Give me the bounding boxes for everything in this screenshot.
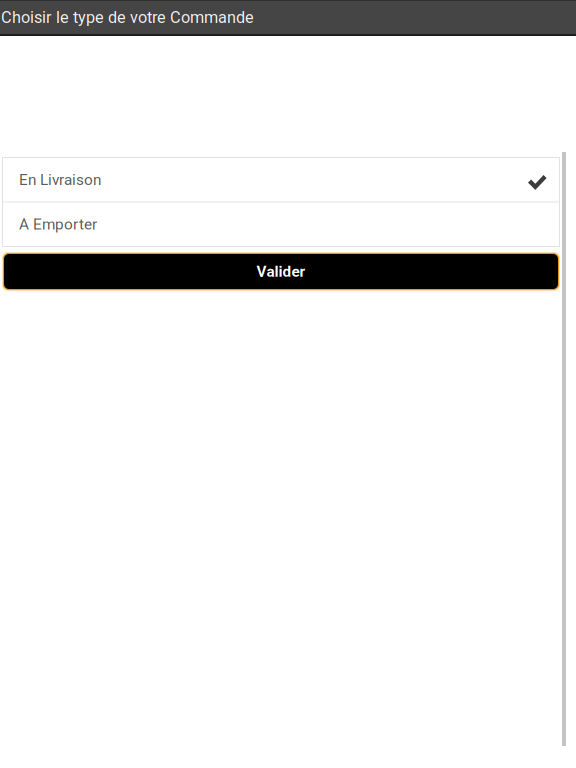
button[interactable]: En Livraison [2,158,560,201]
staticText: Valider [256,262,305,280]
staticText: A Emporter [19,215,97,233]
staticText: Choisir le type de votre Commande [1,8,254,27]
button[interactable]: Valider [2,252,560,291]
staticText: En Livraison [19,171,101,189]
button[interactable]: A Emporter [2,202,560,246]
